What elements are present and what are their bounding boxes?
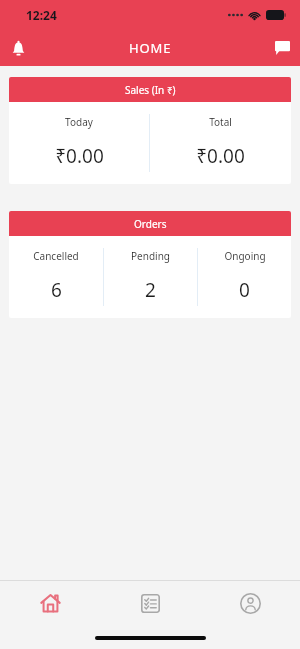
staticText: Sales (In ₹) — [125, 83, 176, 97]
staticText: Today — [65, 115, 93, 129]
staticText: Ongoing — [224, 249, 266, 263]
staticText: ₹0.00 — [55, 143, 104, 169]
button[interactable]: Orders — [100, 581, 200, 626]
staticText: Total — [209, 115, 232, 129]
button[interactable]: Orders — [9, 211, 291, 318]
staticText: 12:24 — [26, 7, 57, 23]
staticText: 2 — [145, 277, 156, 303]
staticText: HOME — [129, 39, 172, 57]
staticText: Cancelled — [33, 249, 79, 263]
button[interactable]: Messages — [264, 30, 300, 66]
staticText: 6 — [51, 277, 62, 303]
button[interactable]: Profile — [200, 581, 300, 626]
staticText: Orders — [134, 217, 167, 231]
button[interactable]: Sales (In ₹) — [9, 77, 291, 184]
staticText: ₹0.00 — [196, 143, 245, 169]
button[interactable]: Notifications — [0, 30, 36, 66]
button[interactable]: Home — [0, 581, 100, 626]
staticText: 0 — [239, 277, 250, 303]
staticText: Pending — [131, 249, 170, 263]
